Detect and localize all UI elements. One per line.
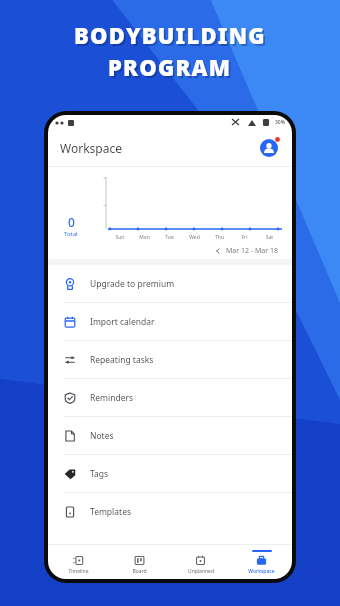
- button[interactable]: Mar 12 - Mar 18: [214, 246, 278, 256]
- button[interactable]: Templates: [48, 493, 292, 530]
- staticText: Thu: [207, 234, 232, 241]
- staticText: 30%: [275, 119, 285, 126]
- button[interactable]: Notes: [48, 417, 292, 454]
- staticText: Templates: [90, 506, 131, 518]
- staticText: Sat: [257, 234, 282, 241]
- staticText: Workspace: [60, 140, 122, 156]
- staticText: Workspace: [248, 568, 275, 575]
- staticText: Tue: [157, 234, 182, 241]
- staticText: Fri: [232, 234, 257, 241]
- staticText: Total: [64, 230, 78, 238]
- staticText: Sun: [108, 234, 132, 241]
- staticText: PROGRAM: [108, 52, 232, 82]
- staticText: Reminders: [90, 392, 134, 404]
- staticText: Mon: [132, 234, 157, 241]
- button[interactable]: Import calendar: [48, 303, 292, 340]
- staticText: Board: [132, 568, 147, 575]
- staticText: Timeline: [68, 568, 89, 575]
- staticText: PROGRAM: [110, 54, 234, 84]
- button[interactable]: Tags: [48, 455, 292, 492]
- staticText: Import calendar: [90, 316, 155, 328]
- staticText: BODYBUILDING: [74, 20, 266, 50]
- button[interactable]: Board: [109, 545, 170, 579]
- staticText: BODYBUILDING: [76, 22, 268, 52]
- staticText: Upgrade to premium: [90, 278, 175, 290]
- staticText: Repeating tasks: [90, 354, 154, 366]
- staticText: Notes: [90, 430, 114, 442]
- staticText: Unplanned: [188, 568, 214, 575]
- button[interactable]: Workspace: [231, 545, 292, 579]
- button[interactable]: Timeline: [48, 545, 109, 579]
- staticText: Tags: [90, 468, 109, 480]
- button[interactable]: Upgrade to premium: [48, 265, 292, 302]
- button[interactable]: Account: [258, 137, 280, 159]
- staticText: Wed: [182, 234, 207, 241]
- button[interactable]: Unplanned: [170, 545, 231, 579]
- button[interactable]: Reminders: [48, 379, 292, 416]
- staticText: 0: [68, 214, 75, 230]
- button[interactable]: Repeating tasks: [48, 341, 292, 378]
- staticText: Mar 12 - Mar 18: [226, 246, 278, 256]
